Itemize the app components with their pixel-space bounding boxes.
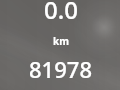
button[interactable]: 81978 steps: [29, 54, 92, 84]
button[interactable]: Distance 0.0 kilometres: [44, 0, 78, 26]
staticText: km: [53, 34, 69, 48]
staticText: 0.0: [44, 0, 78, 26]
staticText: 81978: [29, 54, 92, 84]
